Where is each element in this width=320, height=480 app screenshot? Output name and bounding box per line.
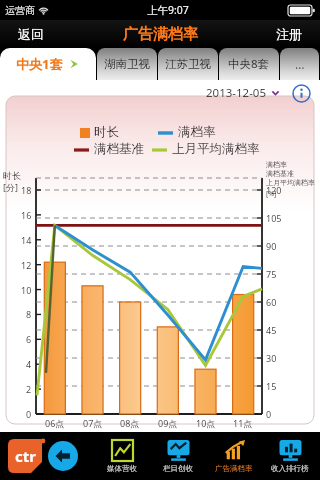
button[interactable]: 江苏卫视 — [158, 48, 218, 80]
button[interactable]: 2013-12-05 — [202, 83, 284, 103]
staticText: 07点 — [83, 417, 103, 429]
button[interactable]: 说明 — [290, 82, 312, 104]
button[interactable]: … — [280, 48, 319, 80]
staticText: 运营商 — [5, 4, 35, 17]
staticText: 18 — [21, 184, 32, 196]
staticText: 上月平均满档率 — [172, 141, 260, 157]
staticText: 12 — [21, 259, 32, 271]
staticText: 满档率 — [178, 124, 216, 140]
staticText: [%] — [266, 189, 277, 199]
staticText: 媒体营收 — [107, 464, 137, 473]
button[interactable]: 中央1套 — [0, 48, 96, 80]
button[interactable]: 中央8套 — [219, 48, 279, 80]
button[interactable]: 注册 — [268, 23, 310, 45]
staticText: 满档率 — [266, 160, 287, 169]
staticText: 4 — [26, 358, 32, 370]
staticText: 11点 — [233, 417, 253, 429]
button[interactable]: 返回上一页 — [48, 441, 78, 471]
staticText: 江苏卫视 — [165, 57, 211, 71]
staticText: 90 — [266, 240, 277, 252]
staticText: 120 — [266, 184, 282, 196]
staticText: ctr — [15, 446, 36, 466]
staticText: 15 — [266, 380, 277, 392]
staticText: 30 — [266, 352, 277, 364]
staticText: 6 — [26, 333, 32, 345]
button[interactable]: 返回 — [10, 23, 52, 45]
staticText: 收入排行榜 — [271, 464, 309, 473]
staticText: 2 — [26, 383, 32, 395]
staticText: 08点 — [120, 417, 140, 429]
staticText: 湖南卫视 — [104, 57, 150, 71]
button[interactable]: 媒体营收 — [94, 432, 150, 480]
staticText: 栏目创收 — [163, 464, 193, 473]
staticText: 75 — [266, 268, 277, 280]
staticText: 广告满档率 — [215, 464, 253, 473]
staticText: 09点 — [158, 417, 178, 429]
button[interactable]: 收入排行榜 — [262, 432, 318, 480]
staticText: 105 — [266, 212, 282, 224]
staticText: 45 — [266, 324, 277, 336]
staticText: 中央1套 — [16, 55, 63, 73]
button[interactable]: 湖南卫视 — [97, 48, 157, 80]
button[interactable]: 广告满档率 — [206, 432, 262, 480]
staticText: 时长 — [94, 124, 119, 140]
staticText: 广告满档率 — [123, 25, 198, 44]
staticText: 上午9:07 — [147, 3, 189, 17]
button[interactable]: 栏目创收 — [150, 432, 206, 480]
staticText: 10 — [21, 284, 32, 296]
staticText: 0 — [26, 408, 32, 420]
staticText: 注册 — [276, 26, 302, 42]
staticText: 满档基准 — [266, 169, 294, 178]
staticText: 返回 — [18, 26, 44, 42]
staticText: 时长 — [3, 170, 21, 181]
staticText: 10点 — [196, 417, 216, 429]
staticText: 16 — [21, 209, 32, 221]
staticText: … — [295, 56, 305, 72]
button[interactable]: CTR 首页 — [8, 439, 42, 473]
staticText: 06点 — [45, 417, 65, 429]
staticText: 60 — [266, 296, 277, 308]
staticText: 中央8套 — [228, 56, 270, 72]
staticText: 0 — [266, 408, 272, 420]
staticText: 14 — [21, 234, 32, 246]
staticText: 满档基准 — [94, 141, 144, 157]
staticText: [分] — [3, 181, 18, 193]
staticText: 2013-12-05 — [206, 85, 267, 101]
staticText: 8 — [26, 308, 32, 320]
staticText: 上月平均满档率 — [266, 178, 315, 187]
